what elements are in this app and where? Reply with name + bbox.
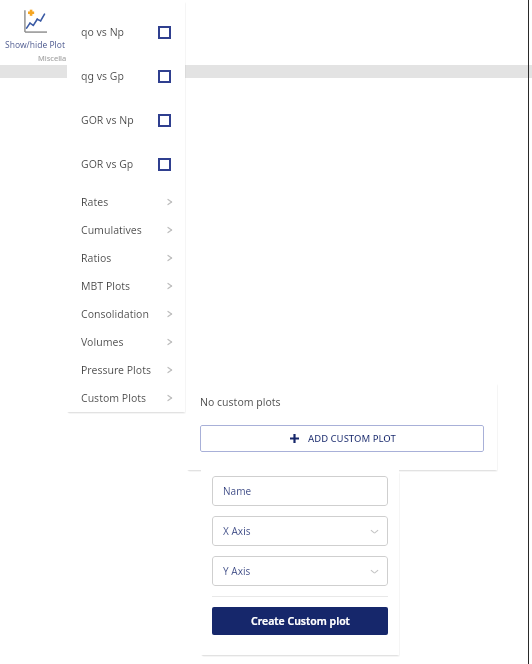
staticText: Volumes — [81, 335, 124, 349]
button[interactable]: qg vs Gp — [67, 54, 185, 98]
staticText: X Axis — [223, 524, 251, 538]
button[interactable]: Y Axis — [212, 556, 388, 586]
staticText: Rates — [81, 195, 109, 209]
other: Show or hide plot — [21, 8, 49, 36]
staticText: Create Custom plot — [251, 614, 350, 628]
staticText: Y Axis — [223, 564, 251, 578]
button[interactable]: Custom Plots — [67, 384, 185, 412]
staticText: Ratios — [81, 251, 112, 265]
button[interactable]: Volumes — [67, 328, 185, 356]
staticText: qo vs Np — [81, 25, 125, 39]
staticText: qg vs Gp — [81, 69, 124, 83]
staticText: MBT Plots — [81, 279, 131, 293]
staticText: Miscella — [38, 53, 67, 63]
button[interactable]: Consolidation — [67, 300, 185, 328]
button[interactable]: MBT Plots — [67, 272, 185, 300]
button[interactable]: Cumulatives — [67, 216, 185, 244]
button[interactable]: qo vs Np — [67, 10, 185, 54]
staticText: ADD CUSTOM PLOT — [308, 432, 396, 445]
staticText: GOR vs Np — [81, 113, 134, 127]
button[interactable]: ADD CUSTOM PLOT — [200, 425, 484, 452]
button[interactable]: X Axis — [212, 516, 388, 546]
staticText: Show/hide Plot — [5, 39, 65, 51]
button[interactable]: GOR vs Gp — [67, 142, 185, 186]
staticText: Pressure Plots — [81, 363, 151, 377]
button[interactable]: Name — [212, 476, 388, 506]
button[interactable]: Create Custom plot — [212, 607, 388, 635]
staticText: Cumulatives — [81, 223, 142, 237]
button[interactable]: Pressure Plots — [67, 356, 185, 384]
button[interactable]: Show or hide plot — [2, 4, 68, 51]
button[interactable]: GOR vs Np — [67, 98, 185, 142]
staticText: Consolidation — [81, 307, 149, 321]
button[interactable]: Rates — [67, 188, 185, 216]
button[interactable]: Ratios — [67, 244, 185, 272]
staticText: Name — [223, 484, 252, 498]
staticText: No custom plots — [200, 395, 281, 409]
staticText: Custom Plots — [81, 391, 147, 405]
staticText: GOR vs Gp — [81, 157, 134, 171]
